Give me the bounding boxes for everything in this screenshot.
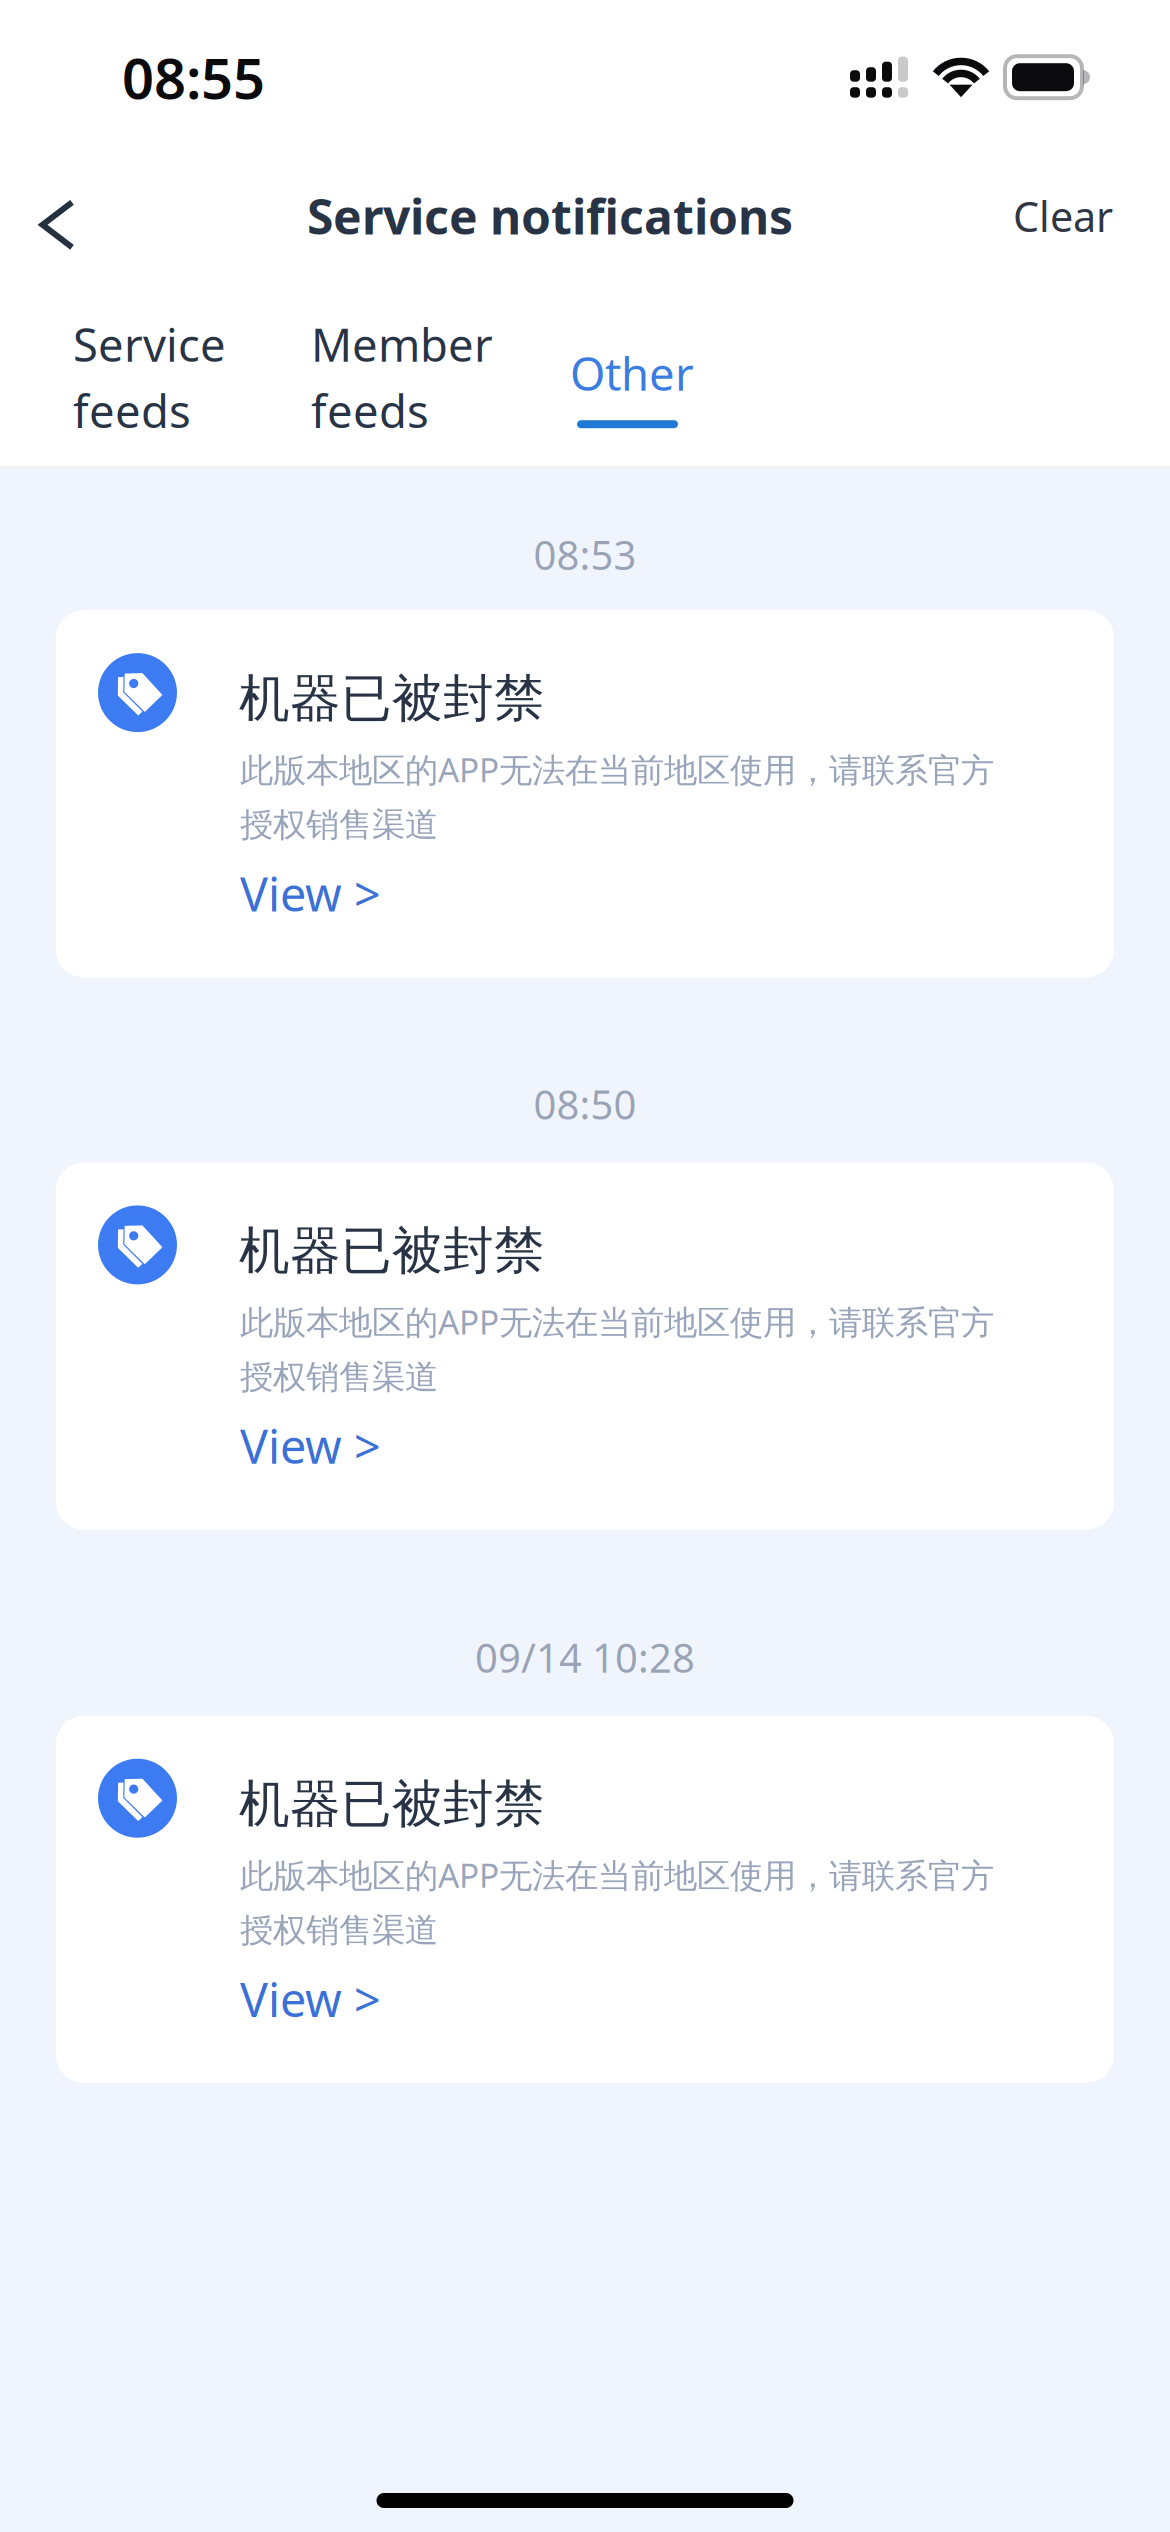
button[interactable]: Back [4, 145, 111, 286]
button[interactable]: View > [98, 1398, 381, 1477]
button[interactable]: View > [98, 1951, 381, 2030]
button[interactable]: 机器已被封禁 [56, 1716, 1114, 2083]
staticText: 此版本地区的APP无法在当前地区使用，请联系官方 [240, 1299, 994, 1344]
button[interactable]: Clear [985, 149, 1141, 283]
staticText: 机器已被封禁 [239, 1220, 545, 1282]
button[interactable]: 机器已被封禁 [56, 610, 1114, 977]
button[interactable]: Member [311, 314, 570, 466]
staticText: Clear [1013, 189, 1113, 243]
button[interactable]: View > [98, 845, 381, 924]
staticText: 08:50 [533, 1077, 636, 1130]
staticText: 授权销售渠道 [240, 1357, 438, 1398]
staticText: Other [570, 343, 694, 403]
staticText: 此版本地区的APP无法在当前地区使用，请联系官方 [240, 747, 994, 791]
staticText: feeds [311, 380, 429, 440]
staticText: View > [240, 862, 381, 924]
staticText: 08:55 [122, 40, 265, 114]
staticText: View > [240, 1415, 381, 1477]
staticText: 授权销售渠道 [240, 804, 438, 845]
staticText: Service notifications [307, 184, 793, 248]
button[interactable]: Other [570, 314, 770, 466]
staticText: 机器已被封禁 [239, 667, 545, 730]
staticText: 09/14 10:28 [475, 1631, 695, 1684]
staticText: View > [240, 1968, 381, 2030]
button[interactable]: Service [73, 314, 311, 466]
staticText: Service [73, 314, 226, 374]
staticText: 机器已被封禁 [239, 1773, 545, 1835]
button[interactable]: 机器已被封禁 [56, 1162, 1114, 1530]
staticText: feeds [73, 380, 191, 440]
staticText: Member [311, 314, 493, 374]
staticText: 08:53 [533, 528, 636, 581]
staticText: 授权销售渠道 [240, 1910, 438, 1951]
staticText: 此版本地区的APP无法在当前地区使用，请联系官方 [240, 1853, 994, 1897]
